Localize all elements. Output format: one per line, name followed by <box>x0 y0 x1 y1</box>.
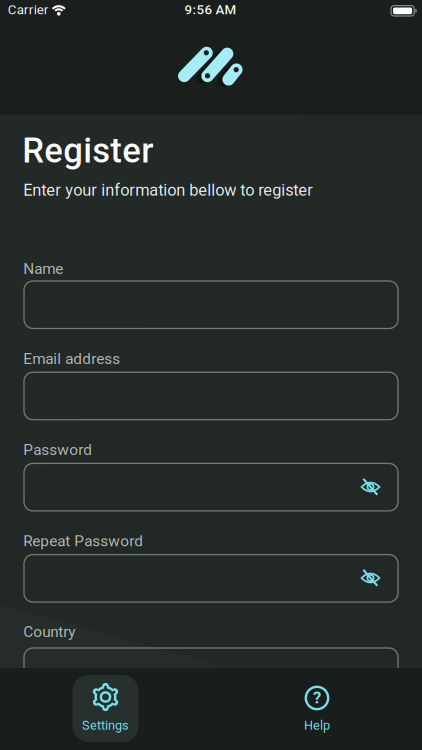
button[interactable] <box>24 648 398 695</box>
staticText: 9:56 AM <box>184 2 236 18</box>
button[interactable] <box>0 115 422 668</box>
staticText: Country <box>23 623 75 641</box>
staticText: Repeat Password <box>23 532 143 550</box>
button[interactable] <box>24 281 398 328</box>
staticText: Password <box>23 441 92 459</box>
staticText: ? <box>313 688 321 707</box>
button[interactable] <box>24 555 398 602</box>
staticText: Settings <box>82 718 129 733</box>
button[interactable]: ? <box>284 675 350 742</box>
staticText: Help <box>304 718 330 733</box>
button[interactable] <box>0 115 422 668</box>
staticText: Carrier <box>8 2 49 18</box>
button[interactable] <box>24 372 398 420</box>
staticText: Email address <box>23 350 120 368</box>
button[interactable] <box>24 463 398 511</box>
staticText: Register <box>22 130 153 171</box>
staticText: Enter your information bellow to registe… <box>23 180 313 200</box>
staticText: Name <box>23 260 63 278</box>
button[interactable]: Settings <box>72 675 138 742</box>
